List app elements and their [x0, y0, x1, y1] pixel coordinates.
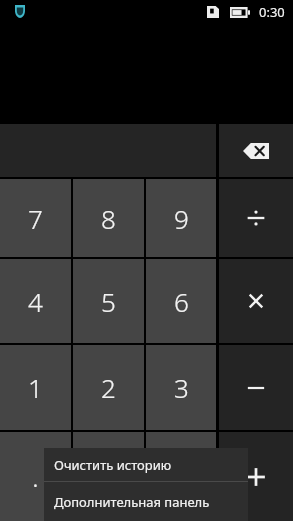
button[interactable]: 5 — [73, 259, 144, 343]
staticText: . — [32, 459, 39, 494]
staticText: 1 — [28, 370, 43, 405]
button[interactable]: 6 — [146, 259, 216, 343]
button[interactable]: 4 — [0, 259, 71, 343]
staticText: 0 — [101, 459, 116, 494]
staticText: = — [174, 459, 189, 494]
staticText: 0:30 — [259, 3, 285, 21]
button[interactable]: 9 — [146, 179, 216, 257]
staticText: 6 — [174, 284, 189, 319]
button[interactable]: 3 — [146, 345, 216, 430]
staticText: 4 — [28, 284, 43, 319]
button[interactable]: . — [0, 432, 71, 521]
button[interactable] — [219, 432, 293, 521]
button[interactable]: Дополнительная панель — [44, 482, 248, 521]
button[interactable]: 8 — [73, 179, 144, 257]
staticText: 9 — [174, 201, 189, 236]
staticText: 8 — [101, 201, 116, 236]
button[interactable] — [219, 345, 293, 430]
staticText: 3 — [174, 370, 189, 405]
staticText: Очистить историю — [54, 456, 172, 474]
staticText: 2 — [101, 370, 116, 405]
staticText: 7 — [28, 201, 43, 236]
button[interactable]: 2 — [73, 345, 144, 430]
button[interactable]: Очистить историю — [44, 448, 248, 481]
staticText: 5 — [101, 284, 116, 319]
button[interactable]: 1 — [0, 345, 71, 430]
button[interactable] — [219, 179, 293, 257]
button[interactable]: 7 — [0, 179, 71, 257]
button[interactable]: Backspace — [219, 124, 293, 177]
button[interactable]: = — [146, 432, 216, 521]
staticText: Дополнительная панель — [54, 493, 210, 511]
button[interactable] — [219, 259, 293, 343]
button[interactable]: 0 — [73, 432, 144, 521]
